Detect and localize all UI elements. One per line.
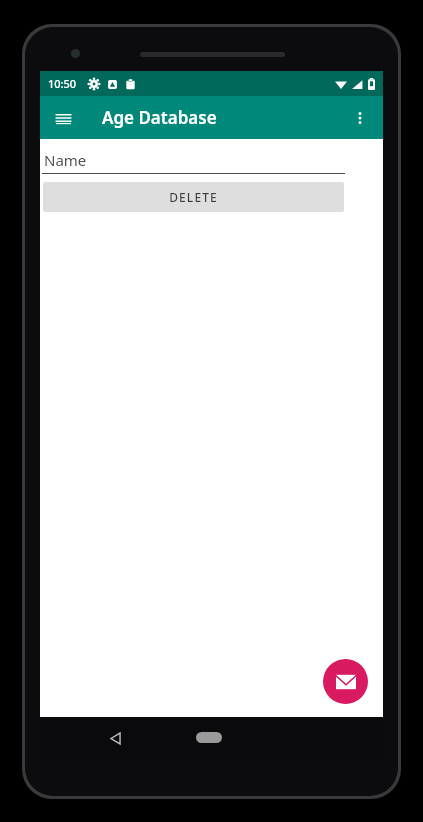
button[interactable]: Home [196,732,222,743]
staticText: Age Database [102,106,217,129]
button[interactable]: Name [40,145,383,175]
button[interactable]: More options [347,105,373,131]
button[interactable]: DELETE [43,182,344,212]
staticText: DELETE [169,189,218,205]
button[interactable]: Send email [323,659,368,704]
button[interactable]: Back [106,729,124,747]
staticText: Name [44,150,87,170]
button[interactable]: Open navigation drawer [50,105,76,131]
staticText: 10:50 [48,76,77,91]
